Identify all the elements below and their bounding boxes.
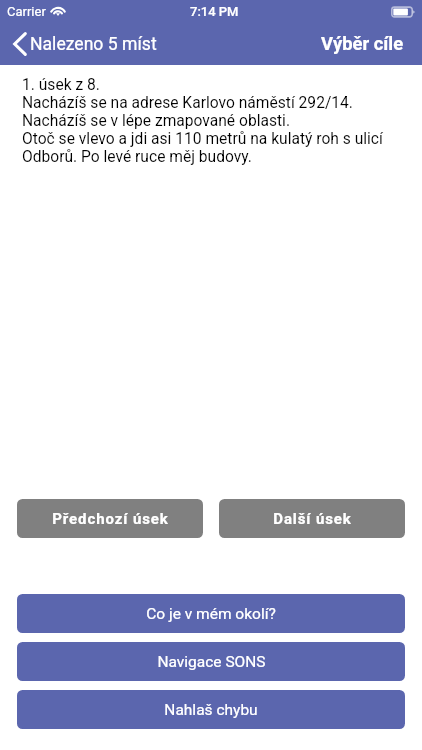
staticText: 1. úsek z 8. Nacházíš se na adrese Karlo… xyxy=(22,76,400,166)
staticText: Výběr cíle xyxy=(321,33,404,55)
staticText: Carrier xyxy=(7,4,46,19)
staticText: Nalezeno 5 míst xyxy=(30,34,157,55)
staticText: 7:14 PM xyxy=(190,4,239,19)
staticText: Navigace SONS xyxy=(157,653,266,671)
staticText: Nahlaš chybu xyxy=(164,701,258,719)
button[interactable]: Další úsek xyxy=(219,499,405,538)
other: Battery xyxy=(391,6,417,18)
button[interactable]: Výběr cíle xyxy=(303,25,422,63)
staticText: Předchozí úsek xyxy=(52,510,169,528)
button[interactable]: Back xyxy=(0,27,165,61)
staticText: Další úsek xyxy=(273,510,352,528)
other: Back xyxy=(13,32,27,56)
button[interactable]: Předchozí úsek xyxy=(17,499,203,538)
staticText: Co je v mém okolí? xyxy=(146,605,276,623)
button[interactable]: Nahlaš chybu xyxy=(17,690,405,729)
button[interactable]: Navigace SONS xyxy=(17,642,405,681)
button[interactable]: Co je v mém okolí? xyxy=(17,594,405,633)
